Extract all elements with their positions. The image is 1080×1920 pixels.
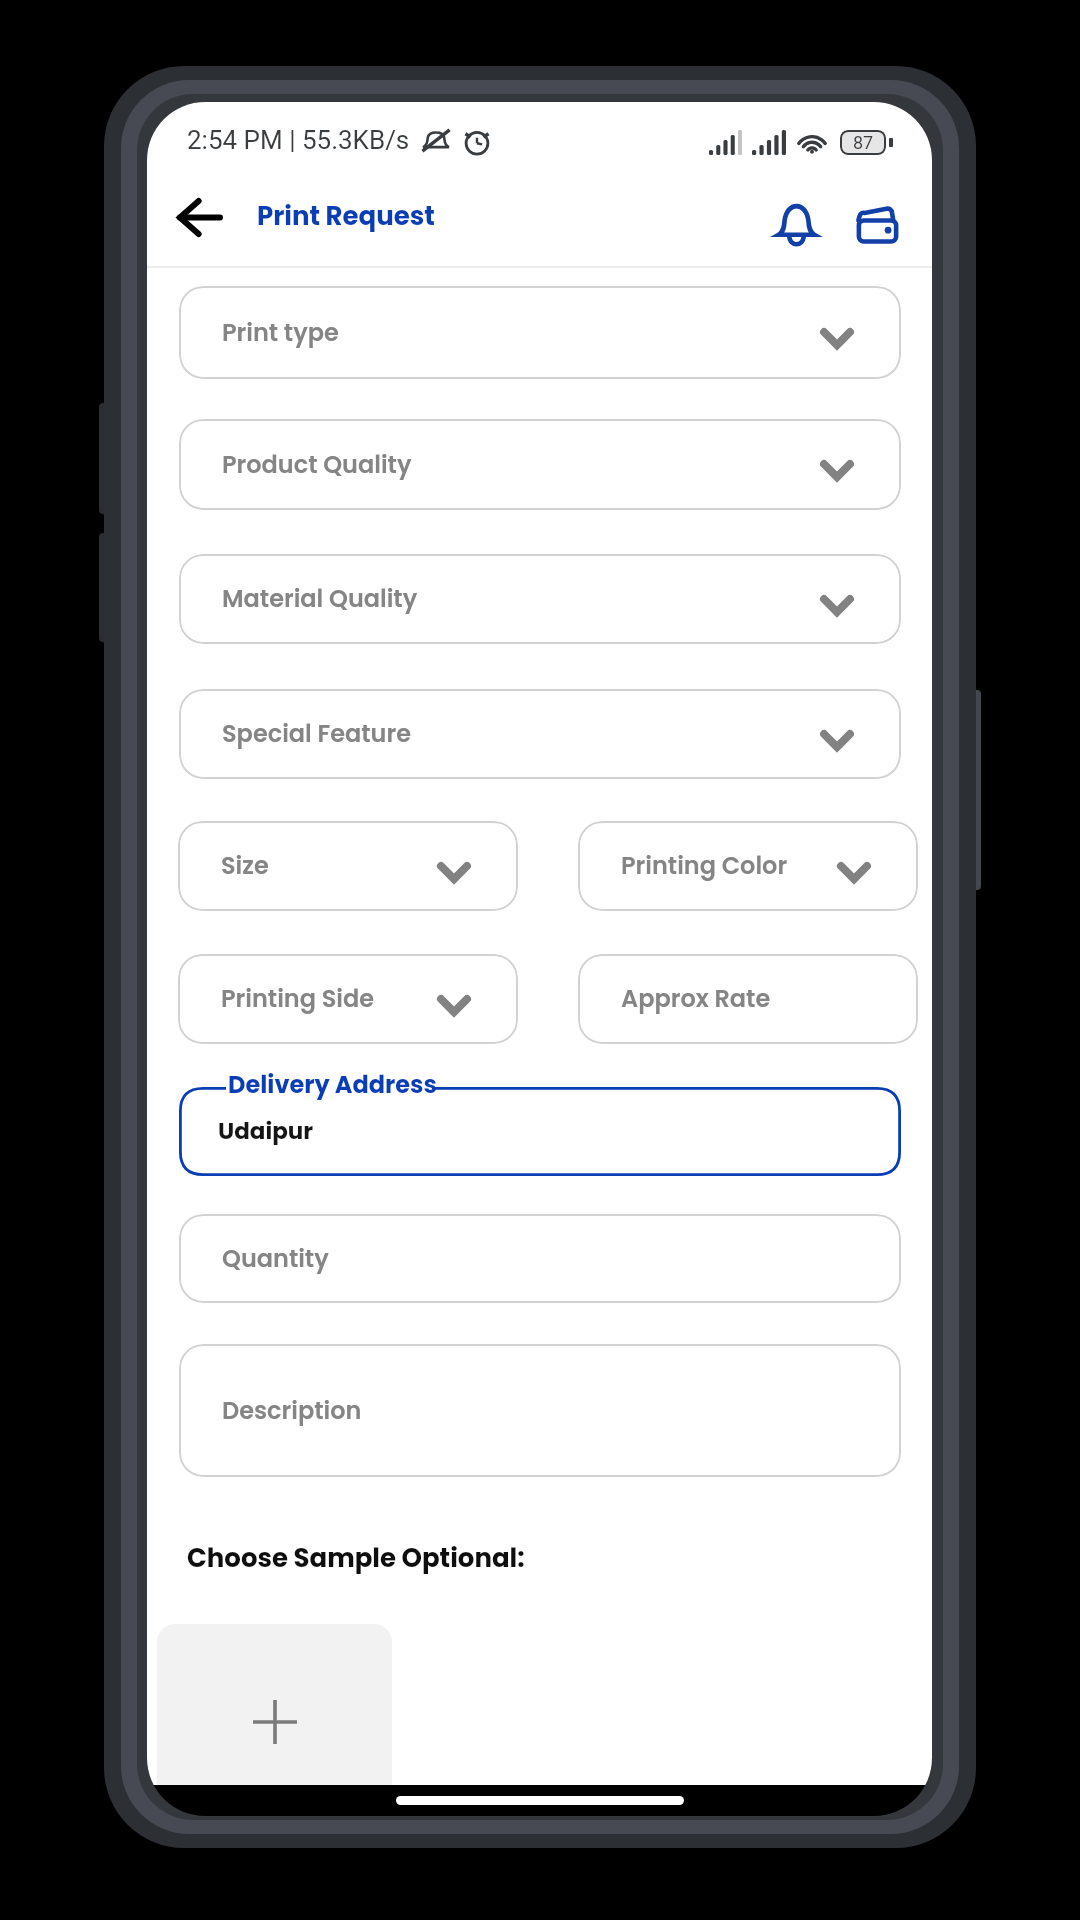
staticText: Print type: [222, 316, 339, 350]
button[interactable]: Add sample: [157, 1624, 392, 1785]
staticText: 2:54 PM | 55.3KB/s: [187, 125, 410, 155]
staticText: Delivery Address: [228, 1068, 437, 1102]
staticText: Material Quality: [222, 582, 418, 616]
button[interactable]: Material Quality: [179, 554, 901, 644]
button[interactable]: Quantity: [179, 1214, 901, 1303]
staticText: Choose Sample Optional:: [187, 1540, 525, 1576]
button[interactable]: Printing Color: [578, 821, 918, 911]
button[interactable]: Wallet: [842, 188, 910, 256]
button[interactable]: Approx Rate: [578, 954, 918, 1044]
button[interactable]: Product Quality: [179, 419, 901, 510]
staticText: Size: [221, 849, 269, 883]
button[interactable]: Notifications: [762, 188, 830, 256]
staticText: Printing Color: [621, 849, 788, 883]
button[interactable]: Udaipur: [179, 1087, 901, 1176]
button[interactable]: Printing Side: [178, 954, 518, 1044]
staticText: Quantity: [222, 1242, 329, 1276]
staticText: Print Request: [257, 198, 435, 234]
button[interactable]: Size: [178, 821, 518, 911]
staticText: Product Quality: [222, 448, 412, 482]
button[interactable]: Back: [162, 185, 236, 259]
staticText: Special Feature: [222, 717, 411, 751]
staticText: Printing Side: [221, 982, 375, 1016]
staticText: Udaipur: [218, 1115, 314, 1147]
button[interactable]: Special Feature: [179, 689, 901, 779]
button[interactable]: Print type: [179, 286, 901, 379]
staticText: 87: [853, 132, 874, 153]
button[interactable]: Description: [179, 1344, 901, 1477]
staticText: Approx Rate: [621, 982, 771, 1016]
staticText: Description: [222, 1394, 362, 1428]
